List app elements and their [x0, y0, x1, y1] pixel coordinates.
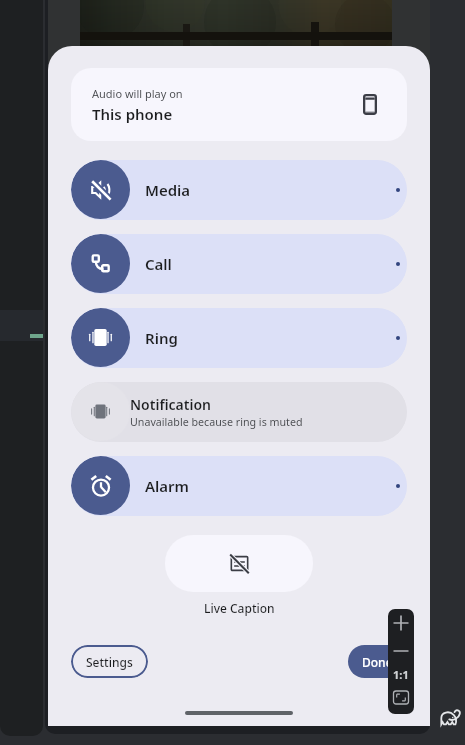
staticText: Media [145, 180, 191, 200]
button[interactable]: Done [348, 645, 407, 678]
button[interactable]: Live Caption [165, 535, 313, 592]
staticText: Live Caption [204, 600, 275, 616]
staticText: Alarm [145, 476, 190, 496]
staticText: Unavailable because ring is muted [130, 415, 303, 430]
staticText: This phone [92, 104, 173, 124]
staticText: Audio will play on [92, 86, 183, 101]
staticText: Settings [86, 654, 133, 670]
button[interactable]: Audio will play on [71, 68, 407, 141]
other: Gradle [440, 708, 462, 727]
staticText: 1:1 [393, 667, 409, 682]
staticText: Call [145, 254, 172, 274]
button[interactable]: Alarm [71, 456, 407, 516]
button[interactable]: Settings [71, 645, 148, 678]
staticText: Done [362, 654, 393, 670]
button[interactable]: Ring [71, 308, 407, 368]
staticText: Notification [130, 395, 211, 414]
staticText: Ring [145, 328, 178, 348]
button[interactable]: Call [71, 234, 407, 294]
button[interactable]: Media [71, 160, 407, 220]
button[interactable]: Notification [71, 382, 407, 442]
